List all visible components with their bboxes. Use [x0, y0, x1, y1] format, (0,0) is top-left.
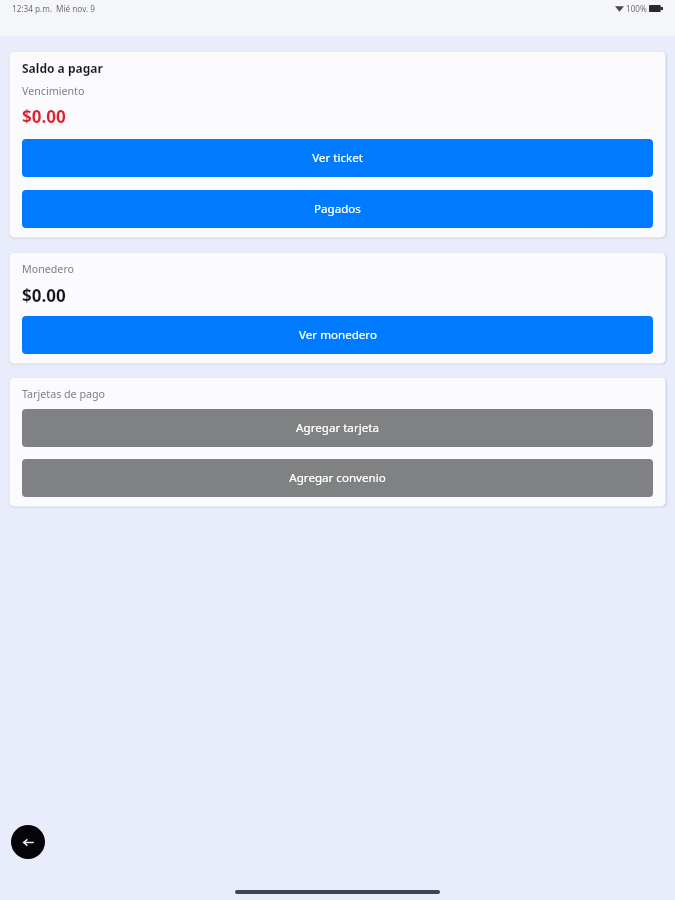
staticText: 12:34 p.m. — [12, 3, 53, 14]
staticText: $0.00 — [22, 284, 66, 307]
button[interactable]: Pagados — [22, 190, 653, 228]
button[interactable]: Ver ticket — [22, 139, 653, 177]
button[interactable]: Ver monedero — [22, 316, 653, 354]
staticText: Agregar convenio — [289, 470, 386, 486]
button[interactable]: Agregar convenio — [22, 459, 653, 497]
button[interactable]: Agregar tarjeta — [22, 409, 653, 447]
staticText: Vencimiento — [22, 84, 85, 99]
staticText: $0.00 — [22, 105, 66, 128]
staticText: Mié nov. 9 — [56, 3, 95, 14]
staticText: Ver monedero — [299, 327, 377, 343]
staticText: Tarjetas de pago — [22, 387, 106, 402]
staticText: Pagados — [314, 201, 361, 217]
staticText: Saldo a pagar — [22, 60, 103, 76]
staticText: 100% — [626, 3, 647, 14]
staticText: Monedero — [22, 262, 75, 277]
staticText: Ver ticket — [312, 150, 363, 166]
button[interactable]: Back — [11, 825, 45, 859]
staticText: Agregar tarjeta — [296, 420, 379, 436]
